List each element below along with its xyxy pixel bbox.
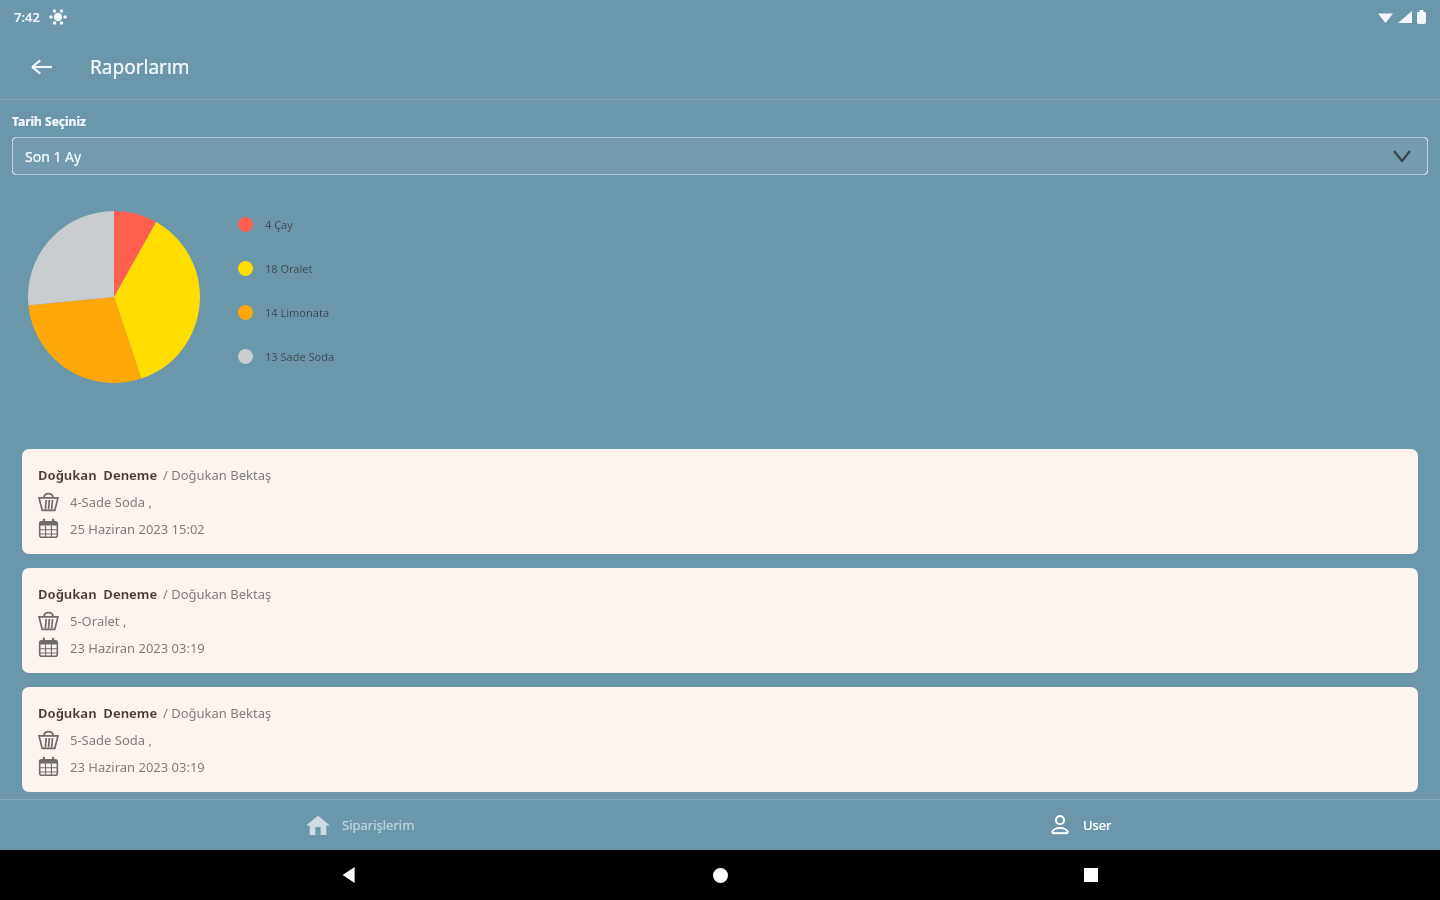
staticText: 23 Haziran 2023 03:19 <box>70 758 205 776</box>
staticText: 5-Sade Soda , <box>70 731 152 749</box>
staticText: Doğukan Deneme <box>38 466 158 484</box>
button[interactable]: Son 1 Ay <box>12 137 1428 175</box>
staticText: 25 Haziran 2023 15:02 <box>70 520 205 538</box>
staticText: Doğukan Deneme <box>38 704 158 722</box>
staticText: 18 Oralet <box>265 261 313 276</box>
staticText: 7:42 <box>14 8 40 26</box>
staticText: 23 Haziran 2023 03:19 <box>70 639 205 657</box>
button[interactable]: Recents <box>1069 853 1113 897</box>
button[interactable]: Back <box>327 853 371 897</box>
staticText: Tarih Seçiniz <box>12 113 86 129</box>
staticText: 5-Oralet , <box>70 612 127 630</box>
staticText: / Doğukan Bektaş <box>163 585 272 603</box>
button[interactable]: Siparişlerim <box>0 800 720 850</box>
staticText: / Doğukan Bektaş <box>163 704 272 722</box>
staticText: 4 Çay <box>265 217 293 232</box>
button[interactable]: User <box>720 800 1440 850</box>
staticText: Siparişlerim <box>342 816 415 834</box>
staticText: User <box>1083 816 1112 834</box>
staticText: Raporlarım <box>90 54 190 80</box>
staticText: 4-Sade Soda , <box>70 493 152 511</box>
button[interactable]: Doğukan Deneme <box>22 568 1418 673</box>
staticText: Doğukan Deneme <box>38 585 158 603</box>
button[interactable]: Doğukan Deneme <box>22 449 1418 554</box>
button[interactable]: Back <box>22 47 62 87</box>
button[interactable]: Doğukan Deneme <box>22 687 1418 792</box>
staticText: 14 Limonata <box>265 305 330 320</box>
staticText: 13 Sade Soda <box>265 349 335 364</box>
staticText: / Doğukan Bektaş <box>163 466 272 484</box>
staticText: Son 1 Ay <box>25 147 82 166</box>
button[interactable]: Home <box>698 853 742 897</box>
